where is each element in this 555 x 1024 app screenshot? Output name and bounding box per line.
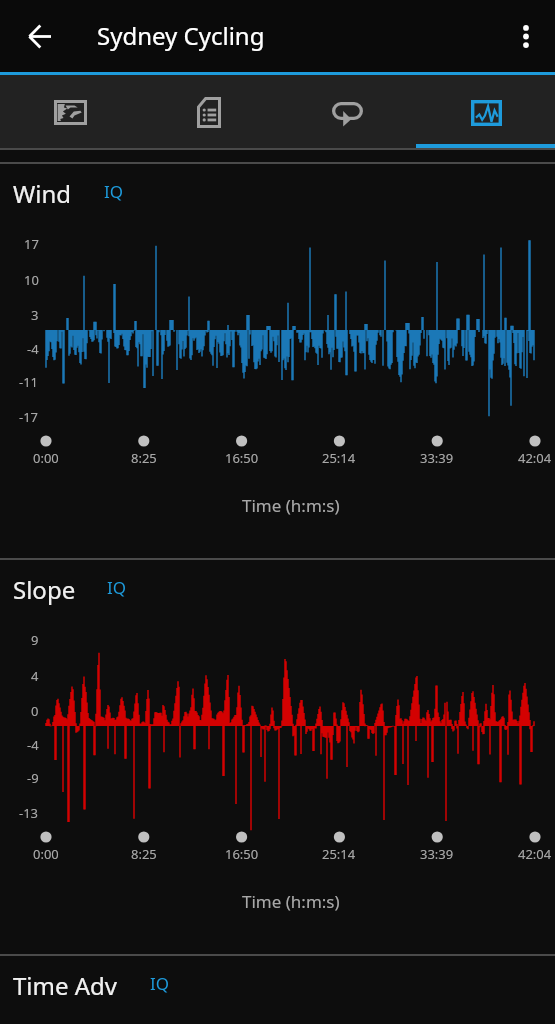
staticText: Sydney Cycling [97,19,265,52]
button[interactable]: Details [138,75,277,148]
staticText: Time (h:m:s) [242,494,340,517]
staticText: 42:04 [518,845,552,863]
staticText: IQ [150,972,170,995]
button[interactable]: Back [11,8,67,64]
button[interactable]: Charts [416,75,555,148]
staticText: -17 [19,408,39,426]
button[interactable]: Laps [277,75,416,148]
staticText: 0:00 [33,845,59,863]
staticText: Slope [13,573,76,606]
staticText: Wind [13,177,72,210]
staticText: 8:25 [131,845,157,863]
staticText: 16:50 [225,449,259,467]
staticText: -4 [27,340,39,358]
button[interactable]: Slope [0,560,555,618]
button[interactable]: Time Adv [0,956,555,1022]
button[interactable]: Wind [0,164,555,222]
staticText: 33:39 [420,845,454,863]
staticText: -13 [19,804,39,822]
staticText: -11 [19,373,39,391]
staticText: 0 [31,702,39,720]
button[interactable]: More options [498,8,554,64]
staticText: 25:14 [322,845,356,863]
staticText: 4 [31,667,39,685]
staticText: Time Adv [13,969,118,1002]
staticText: 25:14 [322,449,356,467]
staticText: IQ [104,180,124,203]
staticText: 8:25 [131,449,157,467]
staticText: 16:50 [225,845,259,863]
button[interactable]: Map [0,75,138,148]
staticText: Time (h:m:s) [242,890,340,913]
staticText: 33:39 [420,449,454,467]
staticText: 10 [24,271,39,289]
staticText: 9 [31,631,39,649]
staticText: 0:00 [33,449,59,467]
staticText: 42:04 [518,449,552,467]
staticText: 17 [24,235,39,253]
staticText: -9 [27,769,39,787]
staticText: 3 [31,306,39,324]
staticText: -4 [27,736,39,754]
staticText: IQ [107,576,127,599]
